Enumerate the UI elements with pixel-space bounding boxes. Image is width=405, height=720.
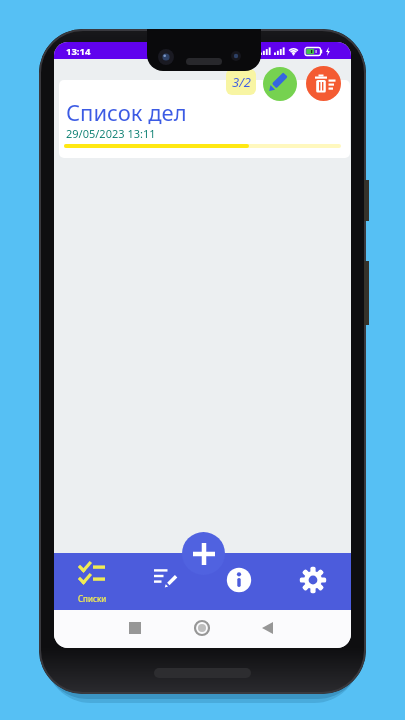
button[interactable] <box>122 615 148 641</box>
button[interactable] <box>306 66 341 101</box>
button[interactable] <box>285 553 341 610</box>
staticText: Список дел <box>66 97 187 127</box>
staticText: 3/2 <box>232 73 251 91</box>
button[interactable] <box>138 553 194 610</box>
staticText: 13:14 <box>66 45 91 58</box>
staticText: 29/05/2023 13:11 <box>66 126 156 141</box>
button[interactable] <box>211 553 267 610</box>
staticText: Списки <box>78 593 107 604</box>
button[interactable] <box>182 532 225 575</box>
button[interactable] <box>189 615 215 641</box>
button[interactable]: Списки <box>64 553 120 610</box>
button[interactable] <box>254 615 280 641</box>
button[interactable] <box>263 67 297 101</box>
